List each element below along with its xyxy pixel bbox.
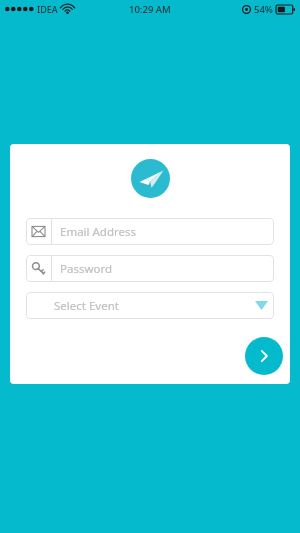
staticText: 54%	[254, 3, 273, 16]
button[interactable]: Email Address	[26, 218, 274, 245]
staticText: IDEA	[37, 3, 58, 15]
button[interactable]: Select Event	[26, 292, 274, 319]
button[interactable]: Password	[26, 255, 274, 282]
staticText: 10:29 AM	[129, 3, 171, 16]
staticText: Email Address	[60, 224, 137, 240]
staticText: Select Event	[54, 298, 119, 314]
button[interactable]: Submit	[245, 337, 283, 375]
staticText: Password	[60, 261, 113, 277]
